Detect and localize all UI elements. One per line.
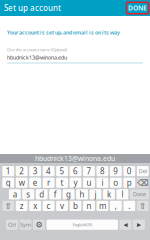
staticText: 4 (46, 166, 51, 176)
button[interactable]: ⚙ (33, 220, 45, 230)
staticText: w (19, 177, 25, 188)
staticText: ▶ (137, 222, 141, 228)
staticText: e (33, 177, 38, 188)
staticText: f (54, 189, 57, 200)
staticText: 1 (6, 166, 11, 176)
staticText: m (99, 201, 106, 211)
button[interactable]: k (103, 189, 115, 199)
staticText: , (115, 201, 117, 211)
button[interactable]: 5 (56, 166, 68, 176)
staticText: t (61, 177, 64, 188)
button[interactable]: g (63, 189, 74, 199)
staticText: Done (133, 191, 146, 198)
button[interactable]: Del (137, 166, 149, 176)
staticText: o (113, 177, 118, 188)
staticText: 9 (113, 166, 118, 176)
button[interactable]: ▶ (133, 220, 145, 230)
button[interactable]: 1 (2, 166, 14, 176)
staticText: Del (139, 168, 147, 175)
button[interactable]: p (123, 178, 135, 188)
button[interactable]: y (70, 178, 81, 188)
staticText: i (101, 177, 103, 188)
staticText: 6 (73, 166, 78, 176)
staticText: Ctrl (8, 221, 16, 228)
button[interactable]: 3 (29, 166, 41, 176)
button[interactable]: d (36, 189, 48, 199)
button[interactable]: r (43, 178, 54, 188)
staticText: v (60, 201, 64, 211)
button[interactable]: b (70, 201, 81, 211)
button[interactable]: u (83, 178, 95, 188)
button[interactable]: z (16, 201, 28, 211)
button[interactable]: ⇧ (2, 201, 14, 211)
staticText: Sym (20, 221, 31, 228)
staticText: z (20, 201, 24, 211)
button[interactable]: i (96, 178, 108, 188)
button[interactable]: 8 (96, 166, 108, 176)
staticText: . (128, 201, 130, 211)
button[interactable]: t (56, 178, 68, 188)
button[interactable]: a (9, 189, 21, 199)
button[interactable]: DONE (126, 2, 148, 14)
button[interactable]: e (29, 178, 41, 188)
staticText: hbudnick13@winona.edu (7, 54, 67, 61)
button[interactable]: s (22, 189, 34, 199)
button[interactable]: 0 (123, 166, 135, 176)
staticText: d (39, 189, 44, 200)
staticText: 3 (33, 166, 38, 176)
button[interactable]: 6 (70, 166, 81, 176)
button[interactable]: Done (130, 189, 149, 199)
staticText: ⇧ (139, 201, 146, 210)
button[interactable]: o (110, 178, 122, 188)
staticText: 5 (60, 166, 65, 176)
button[interactable]: h (76, 189, 88, 199)
button[interactable]: q (2, 178, 14, 188)
button[interactable]: ⇧ (137, 201, 149, 211)
staticText: s (26, 189, 30, 200)
button[interactable]: j (90, 189, 101, 199)
staticText: r (47, 177, 50, 188)
button[interactable]: Ctrl (6, 220, 18, 230)
staticText: p (127, 177, 132, 188)
staticText: ⌫ (137, 178, 148, 187)
staticText: DONE (128, 4, 147, 12)
staticText: x (33, 201, 37, 211)
staticText: Give this account a name (Optional) (7, 47, 67, 52)
staticText: 2 (19, 166, 24, 176)
button[interactable]: 2 (16, 166, 28, 176)
button[interactable]: 7 (83, 166, 95, 176)
staticText: u (86, 177, 91, 188)
button[interactable]: l (116, 189, 128, 199)
staticText: ◀ (123, 222, 127, 228)
button[interactable]: c (43, 201, 54, 211)
staticText: ⇧ (5, 201, 12, 210)
button[interactable]: ◀ (120, 220, 131, 230)
staticText: Your account is set up, and email is on … (7, 29, 120, 36)
button[interactable]: f (49, 189, 61, 199)
button[interactable]: . (123, 201, 135, 211)
staticText: 8 (100, 166, 105, 176)
button[interactable]: 4 (43, 166, 54, 176)
button[interactable]: m (96, 201, 108, 211)
staticText: Set up account (4, 3, 61, 13)
staticText: g (66, 189, 71, 200)
button[interactable]: v (56, 201, 68, 211)
staticText: hbudnick13@winona.edu (35, 154, 115, 163)
staticText: English(US) (73, 222, 92, 227)
button[interactable]: 9 (110, 166, 122, 176)
staticText: b (73, 201, 78, 211)
button[interactable]: x (29, 201, 41, 211)
staticText: a (13, 189, 17, 200)
staticText: k (107, 189, 111, 200)
staticText: l (121, 189, 123, 200)
button[interactable]: Sym (20, 220, 31, 230)
staticText: c (47, 201, 51, 211)
button[interactable]: ⌫ (137, 178, 149, 188)
staticText: 0 (127, 166, 132, 176)
staticText: j (94, 189, 96, 200)
button[interactable]: English(US) (46, 220, 118, 230)
button[interactable]: w (16, 178, 28, 188)
staticText: q (6, 177, 11, 188)
button[interactable]: , (110, 201, 122, 211)
button[interactable]: n (83, 201, 95, 211)
